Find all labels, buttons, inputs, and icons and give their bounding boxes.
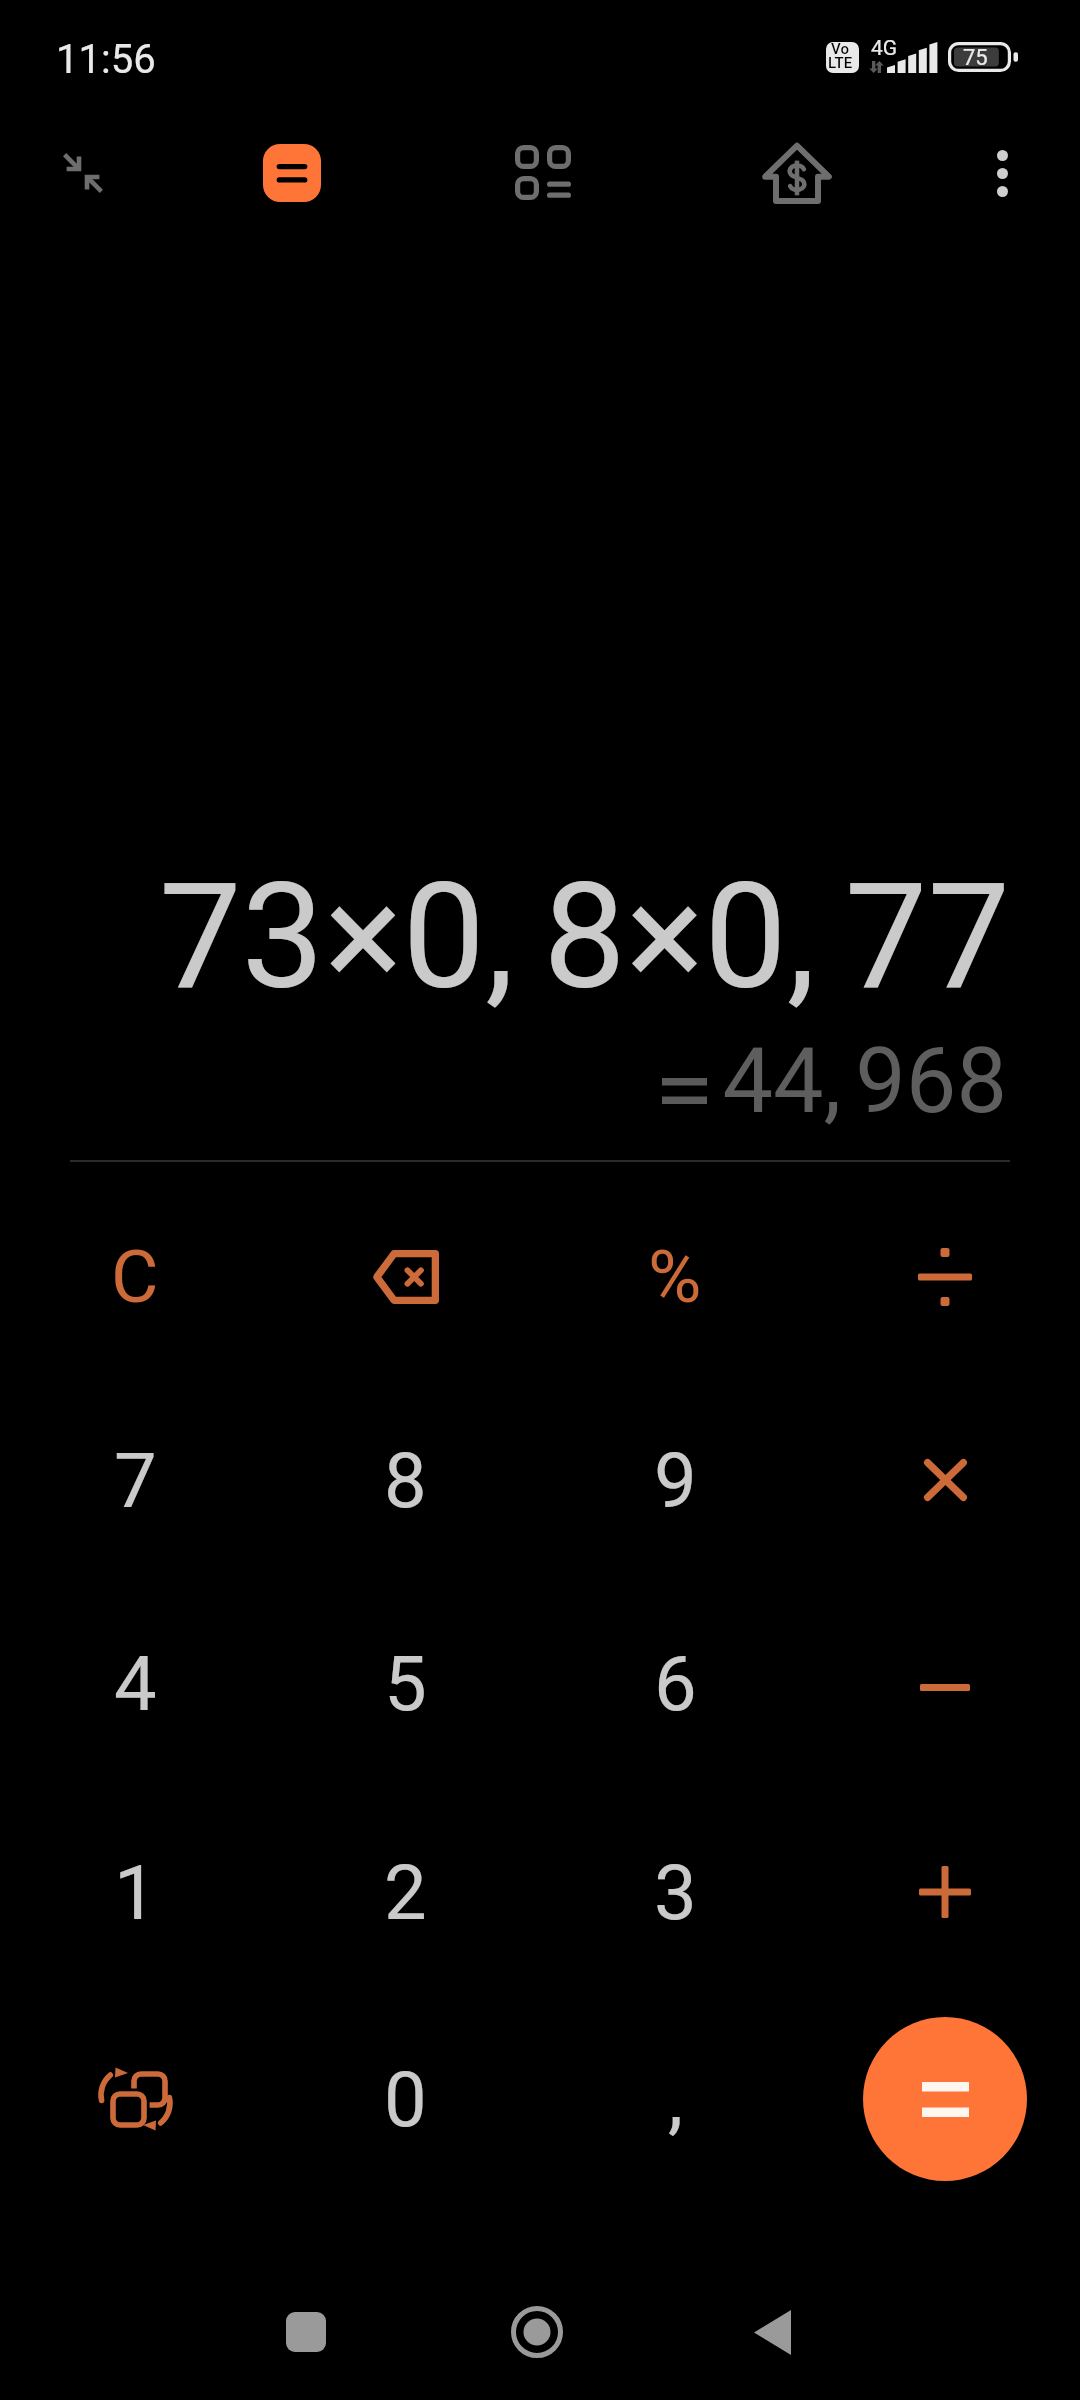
button[interactable]: , <box>540 1998 810 2200</box>
button[interactable]: Plus <box>810 1791 1080 1993</box>
button[interactable]: Home <box>497 2292 577 2372</box>
button[interactable]: Multiply <box>810 1379 1080 1581</box>
staticText: 73×0,8×0,77 <box>0 851 1010 1023</box>
button[interactable]: Collapse <box>38 128 128 218</box>
staticText: 11:56 <box>56 36 156 83</box>
button[interactable]: 5 <box>270 1582 540 1784</box>
button[interactable]: 7 <box>0 1379 270 1581</box>
button[interactable]: 9 <box>540 1379 810 1581</box>
button[interactable]: 8 <box>270 1379 540 1581</box>
button[interactable]: Converter <box>498 127 588 217</box>
button[interactable]: % <box>540 1176 810 1378</box>
button[interactable]: Calculator <box>247 128 337 218</box>
staticText: 75 <box>963 45 988 71</box>
button[interactable]: Minus <box>810 1582 1080 1784</box>
staticText: 44,968 <box>0 1029 1007 1134</box>
button[interactable]: Mortgage <box>752 128 842 218</box>
staticText: 4 <box>114 1639 157 1728</box>
button[interactable]: 0 <box>270 1998 540 2200</box>
staticText: 2 <box>384 1848 427 1937</box>
button[interactable]: C <box>0 1176 270 1378</box>
staticText: Vo <box>831 42 849 58</box>
button[interactable]: Back <box>732 2292 812 2372</box>
button[interactable]: Recents <box>266 2292 346 2372</box>
button[interactable]: 4 <box>0 1582 270 1784</box>
staticText: 7 <box>114 1436 157 1525</box>
staticText: C <box>111 1234 159 1320</box>
button[interactable]: 3 <box>540 1791 810 1993</box>
button[interactable]: 1 <box>0 1791 270 1993</box>
staticText: 0 <box>384 2055 427 2144</box>
staticText: 1 <box>114 1848 157 1937</box>
button[interactable]: Backspace <box>270 1176 540 1378</box>
button[interactable]: More options <box>957 128 1047 218</box>
staticText: , <box>668 2054 683 2143</box>
staticText: 4G <box>871 36 898 61</box>
staticText: 6 <box>654 1639 697 1728</box>
staticText: 8 <box>384 1436 427 1525</box>
staticText: % <box>648 1234 702 1320</box>
button[interactable]: Convert <box>0 1998 270 2200</box>
button[interactable]: 6 <box>540 1582 810 1784</box>
staticText: 5 <box>384 1639 427 1728</box>
button[interactable]: Equals <box>863 2017 1027 2181</box>
staticText: 9 <box>654 1436 697 1525</box>
staticText: 3 <box>654 1848 697 1937</box>
staticText: LTE <box>828 54 853 72</box>
button[interactable]: Divide <box>810 1176 1080 1378</box>
button[interactable]: 2 <box>270 1791 540 1993</box>
